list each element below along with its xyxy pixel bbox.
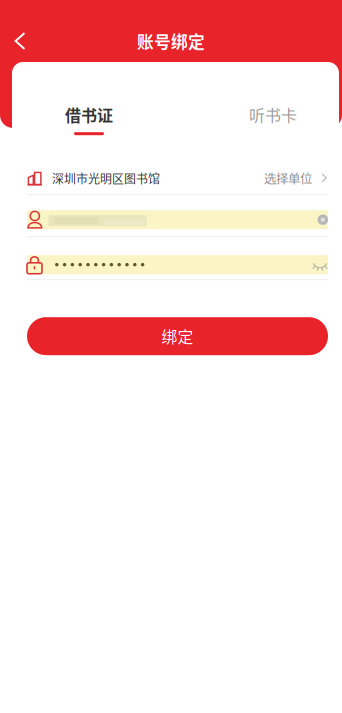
staticText: 借书证: [65, 103, 113, 126]
staticText: 账号绑定: [137, 29, 205, 53]
staticText: 选择单位: [264, 169, 312, 187]
button[interactable]: Clear text: [318, 214, 328, 225]
button[interactable]: 绑定: [27, 317, 328, 355]
staticText: 绑定: [161, 325, 193, 348]
button[interactable]: Show password: [312, 258, 328, 272]
button[interactable]: 深圳市光明区图书馆: [12, 162, 339, 195]
button[interactable]: 听书卡: [233, 103, 313, 135]
button[interactable]: Back: [1, 21, 39, 61]
button[interactable]: 借书证: [49, 103, 129, 135]
staticText: 深圳市光明区图书馆: [52, 169, 160, 187]
staticText: 听书卡: [249, 103, 297, 126]
